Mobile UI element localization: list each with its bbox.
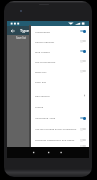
staticText: Site Chromebook <box>35 60 79 63</box>
button[interactable]: Descriptions <box>31 90 89 101</box>
button[interactable]: Back <box>10 28 16 34</box>
staticText: Keyboard suggestions and Tweak <box>35 138 79 141</box>
button[interactable]: Read only <box>31 66 89 76</box>
button[interactable]: Tanker highlight <box>31 36 89 46</box>
button[interactable]: Use text storage access Framework <box>31 123 89 134</box>
button[interactable]: Theme <box>31 101 89 112</box>
staticText: Save list <box>16 36 26 40</box>
button[interactable]: Flash ads <box>31 76 89 86</box>
button[interactable]: Site Chromebook <box>31 56 89 66</box>
button[interactable]: Landscaping <box>31 26 89 147</box>
staticText: Use text storage access Framework <box>35 127 79 130</box>
staticText: Advertising slide <box>35 116 79 119</box>
staticText: Ring content <box>35 50 79 53</box>
staticText: Landscaping <box>35 30 79 33</box>
staticText: Descriptions <box>35 94 82 97</box>
button[interactable]: Ring content <box>31 46 89 56</box>
staticText: Read only <box>35 70 79 73</box>
staticText: Theme <box>35 105 85 108</box>
button[interactable]: Advertising slide <box>31 112 89 123</box>
button[interactable]: Side auto <box>31 145 89 147</box>
staticText: Type <box>20 28 29 33</box>
button[interactable]: Landscaping <box>31 26 89 36</box>
staticText: Tanker highlight <box>35 40 79 43</box>
button[interactable]: Keyboard suggestions and Tweak <box>31 134 89 145</box>
staticText: Flash ads <box>35 80 85 83</box>
